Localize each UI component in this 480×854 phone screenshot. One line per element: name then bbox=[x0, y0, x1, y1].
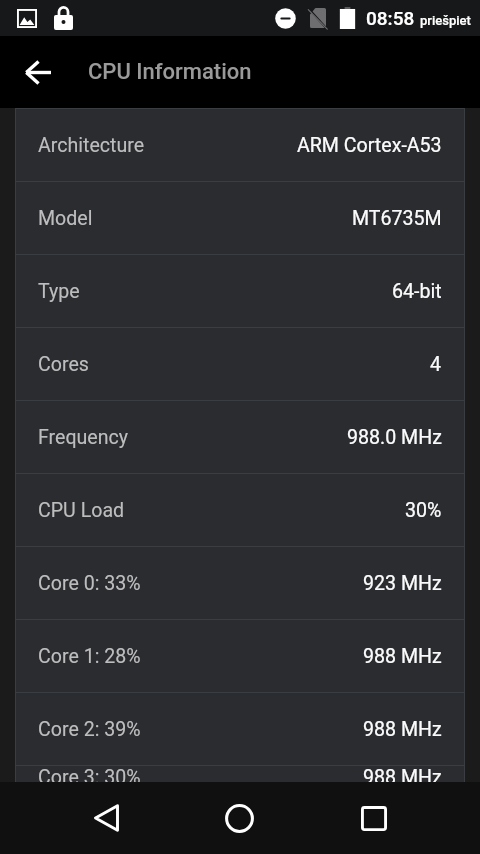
staticText: 30% bbox=[405, 499, 442, 522]
staticText: Core 1: 28% bbox=[38, 645, 141, 668]
button[interactable]: Home bbox=[216, 782, 263, 854]
button[interactable]: Navigate up bbox=[14, 48, 62, 96]
button[interactable]: Frequency bbox=[15, 400, 465, 473]
staticText: 4 bbox=[430, 353, 442, 376]
button[interactable]: Model bbox=[15, 181, 465, 254]
staticText: 64-bit bbox=[392, 280, 442, 303]
button[interactable]: Core 0: 33% bbox=[15, 546, 465, 619]
staticText: Model bbox=[38, 207, 93, 230]
button[interactable]: Type bbox=[15, 254, 465, 327]
button[interactable]: Back bbox=[83, 782, 130, 854]
staticText: Architecture bbox=[38, 134, 145, 157]
button[interactable]: Core 1: 28% bbox=[15, 619, 465, 692]
staticText: Core 2: 39% bbox=[38, 718, 141, 741]
staticText: MT6735M bbox=[352, 207, 442, 230]
staticText: Type bbox=[38, 280, 80, 303]
staticText: 08:58 bbox=[366, 7, 415, 29]
button[interactable]: Cores bbox=[15, 327, 465, 400]
staticText: 988 MHz bbox=[363, 766, 442, 782]
staticText: CPU Information bbox=[88, 59, 252, 85]
staticText: 988 MHz bbox=[363, 718, 442, 741]
staticText: Frequency bbox=[38, 426, 129, 449]
staticText: CPU Load bbox=[38, 499, 125, 522]
staticText: 988.0 MHz bbox=[347, 426, 442, 449]
button[interactable]: Core 2: 39% bbox=[15, 692, 465, 765]
staticText: priešpiet bbox=[420, 13, 471, 28]
staticText: 923 MHz bbox=[363, 572, 442, 595]
staticText: Core 3: 30% bbox=[38, 766, 141, 782]
staticText: Cores bbox=[38, 353, 89, 376]
button[interactable]: CPU Load bbox=[15, 473, 465, 546]
staticText: Core 0: 33% bbox=[38, 572, 141, 595]
button[interactable]: Architecture bbox=[15, 108, 465, 181]
button[interactable]: Recent apps bbox=[350, 782, 397, 854]
staticText: 988 MHz bbox=[363, 645, 442, 668]
button[interactable]: Core 3: 30% bbox=[15, 765, 465, 782]
staticText: ARM Cortex-A53 bbox=[297, 134, 442, 157]
